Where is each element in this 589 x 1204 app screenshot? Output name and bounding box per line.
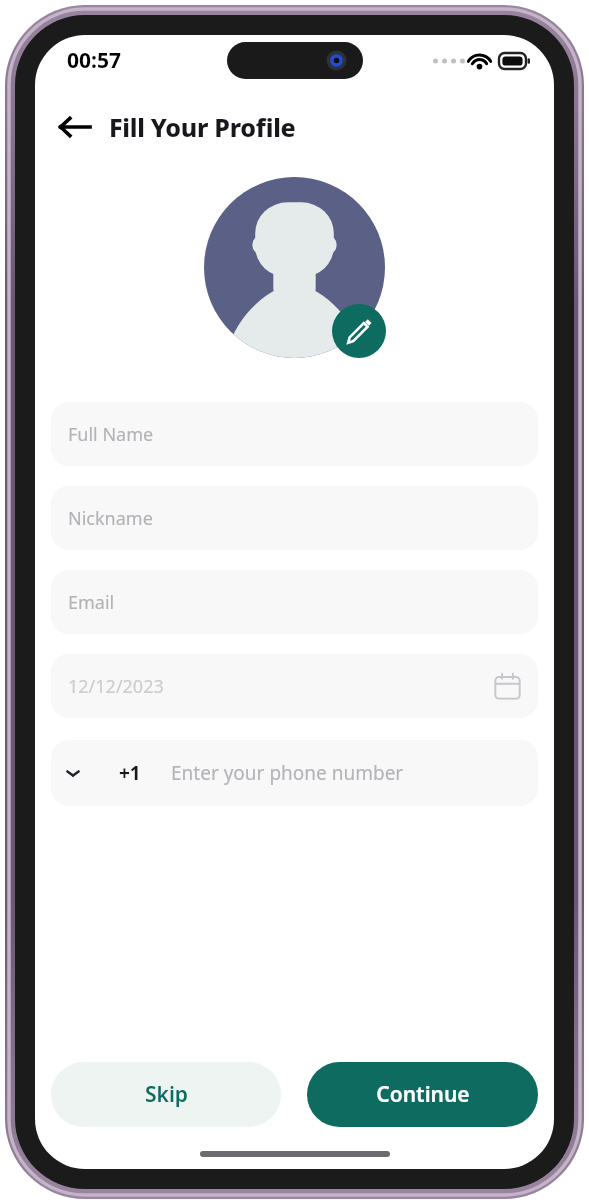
staticText: Fill Your Profile [109,110,296,144]
button[interactable]: 12/12/2023 [51,654,538,718]
staticText: Continue [376,1080,470,1109]
button[interactable]: Edit profile photo [332,304,386,358]
staticText: Nickname [68,506,153,531]
button[interactable]: Full Name [51,402,538,466]
staticText: +1 [119,760,141,786]
staticText: Enter your phone number [171,760,404,786]
staticText: Email [68,590,115,615]
button[interactable]: Email [51,570,538,634]
staticText: 12/12/2023 [68,674,164,699]
staticText: Full Name [68,422,154,447]
staticText: Skip [145,1080,188,1109]
button[interactable]: Skip [51,1062,281,1127]
button[interactable]: Nickname [51,486,538,550]
staticText: 00:57 [67,46,121,75]
button[interactable]: +1 [51,740,538,806]
button[interactable]: Continue [307,1062,538,1127]
button[interactable]: Back [53,105,97,149]
